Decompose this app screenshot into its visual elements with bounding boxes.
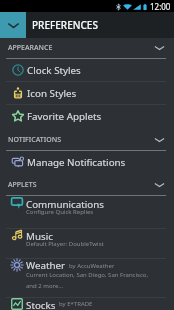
staticText: Clock Styles bbox=[27, 64, 81, 77]
staticText: APPEARANCE bbox=[8, 43, 53, 53]
button[interactable]: Communications bbox=[0, 196, 174, 228]
button[interactable]: Weather bbox=[0, 259, 174, 297]
button[interactable]: Clock Styles bbox=[0, 59, 174, 81]
staticText: Stocks bbox=[26, 299, 56, 310]
staticText: PREFERENCES bbox=[32, 18, 98, 32]
button[interactable]: APPEARANCE bbox=[0, 38, 174, 58]
button[interactable]: Icon Styles bbox=[0, 82, 174, 104]
staticText: Weather bbox=[26, 259, 66, 272]
staticText: by E*TRADE bbox=[59, 300, 93, 308]
button[interactable]: Navigate up bbox=[0, 12, 26, 38]
staticText: Manage Notifications bbox=[27, 156, 126, 169]
button[interactable]: NOTIFICATIONS bbox=[0, 130, 174, 150]
button[interactable]: Stocks bbox=[0, 298, 174, 310]
staticText: 12:00 bbox=[150, 1, 171, 12]
button[interactable]: Music bbox=[0, 229, 174, 258]
staticText: Current Location, San Diego, San Francis… bbox=[26, 271, 149, 290]
button[interactable]: Manage Notifications bbox=[0, 151, 174, 173]
button[interactable]: Favorite Applets bbox=[0, 105, 174, 127]
staticText: Default Player: DoubleTwist bbox=[26, 240, 104, 248]
staticText: APPLETS bbox=[8, 180, 37, 190]
staticText: by AccuWeather bbox=[69, 262, 115, 270]
button[interactable]: APPLETS bbox=[0, 175, 174, 195]
staticText: NOTIFICATIONS bbox=[8, 135, 62, 145]
staticText: Favorite Applets bbox=[27, 110, 102, 123]
staticText: Configure Quick Replies bbox=[26, 208, 94, 216]
staticText: Communications bbox=[26, 198, 105, 211]
staticText: Icon Styles bbox=[27, 87, 77, 100]
staticText: Music bbox=[26, 230, 53, 243]
